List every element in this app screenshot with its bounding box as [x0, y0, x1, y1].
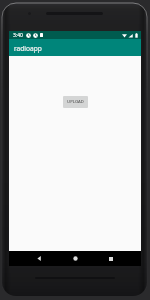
button[interactable]: Back [25, 251, 53, 266]
staticText: radioapp [14, 44, 42, 53]
button[interactable]: Recent apps [97, 251, 125, 266]
button[interactable]: Home [61, 251, 89, 266]
button[interactable]: UPLOAD [63, 96, 88, 108]
staticText: 3:40 [13, 32, 23, 39]
staticText: UPLOAD [67, 99, 84, 105]
